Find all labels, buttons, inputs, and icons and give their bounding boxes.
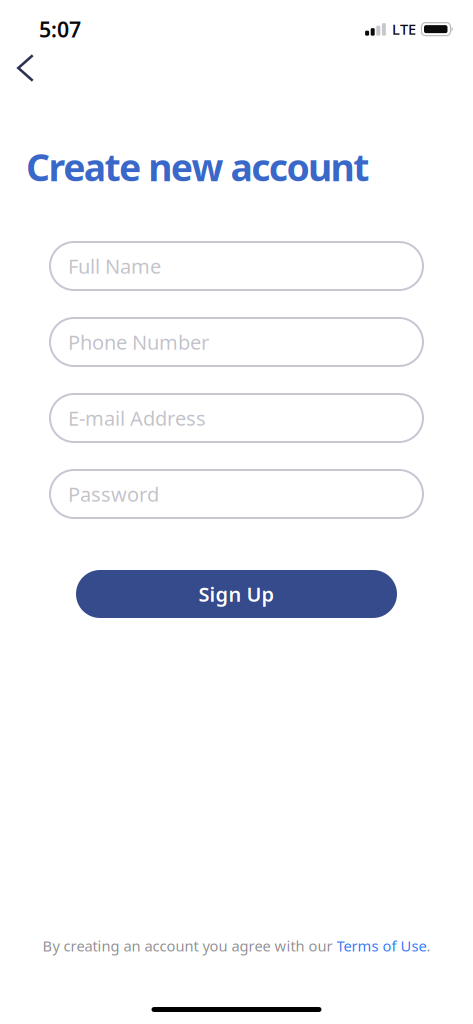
staticText: Password bbox=[68, 481, 159, 507]
button[interactable]: Terms of Use bbox=[336, 936, 426, 955]
staticText: Phone Number bbox=[68, 329, 209, 355]
staticText: . bbox=[426, 936, 430, 955]
staticText: E-mail Address bbox=[68, 405, 206, 431]
staticText: Sign Up bbox=[198, 581, 274, 607]
staticText: Full Name bbox=[68, 253, 161, 279]
staticText: Terms of Use bbox=[336, 936, 426, 955]
button[interactable]: Back bbox=[0, 0, 34, 82]
button[interactable]: Sign Up bbox=[76, 570, 397, 618]
button[interactable]: Full Name bbox=[50, 242, 423, 290]
button[interactable]: Phone Number bbox=[50, 318, 423, 366]
button[interactable]: Password bbox=[50, 470, 423, 518]
staticText: LTE bbox=[392, 19, 416, 39]
staticText: By creating an account you agree with ou… bbox=[42, 936, 336, 955]
button[interactable]: E-mail Address bbox=[50, 394, 423, 442]
staticText: 5:07 bbox=[39, 15, 81, 43]
staticText: Create new account bbox=[26, 142, 369, 192]
